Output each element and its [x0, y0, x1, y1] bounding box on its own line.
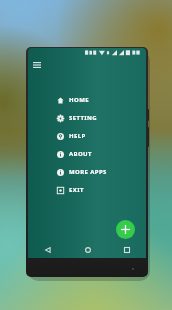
button[interactable]: Back	[28, 242, 68, 258]
button[interactable]: SETTING	[57, 109, 137, 127]
button[interactable]: Add	[116, 220, 135, 239]
staticText: MORE APPS	[69, 168, 107, 176]
staticText: ABOUT	[69, 150, 92, 158]
button[interactable]: HOME	[57, 91, 137, 109]
staticText: SETTING	[69, 114, 98, 122]
button[interactable]: Recent apps	[107, 242, 146, 258]
staticText: HELP	[69, 132, 86, 140]
staticText: HOME	[69, 96, 89, 104]
button[interactable]: ABOUT	[57, 145, 137, 163]
button[interactable]: Open navigation menu	[31, 59, 43, 71]
staticText: EXIT	[69, 186, 84, 194]
button[interactable]: MORE APPS	[57, 163, 137, 181]
button[interactable]: EXIT	[57, 181, 137, 199]
button[interactable]: Home	[68, 242, 107, 258]
button[interactable]: HELP	[57, 127, 137, 145]
